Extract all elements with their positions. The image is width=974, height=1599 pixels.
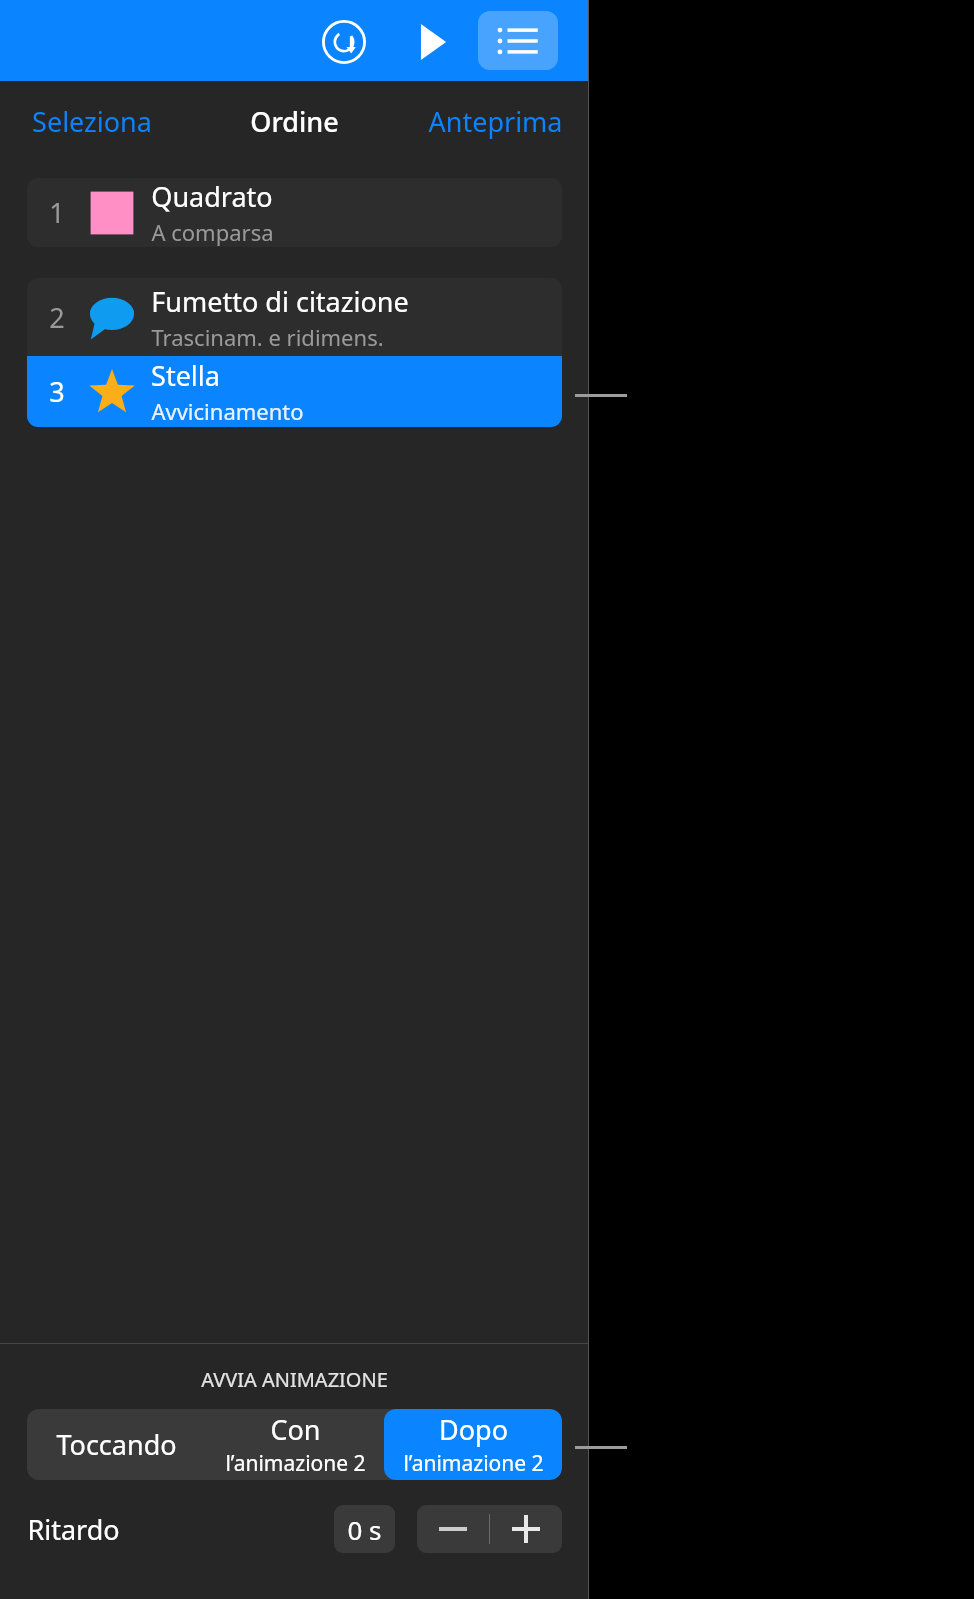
staticText: AVVIA ANIMAZIONE	[201, 1366, 388, 1393]
button[interactable]: Elenco animazioni	[478, 11, 558, 70]
staticText: Con	[270, 1411, 321, 1448]
button[interactable]: 3	[27, 356, 562, 427]
staticText: Trascinam. e ridimens.	[151, 322, 384, 352]
button[interactable]: Dopo	[384, 1409, 562, 1480]
staticText: Fumetto di citazione	[151, 283, 409, 320]
button[interactable]: Con	[206, 1409, 384, 1480]
staticText: Ordine	[250, 103, 339, 140]
button[interactable]: Riduci ritardo	[417, 1505, 489, 1553]
button[interactable]: 2	[27, 278, 562, 356]
staticText: 3	[49, 373, 65, 410]
button[interactable]: Toccando	[27, 1409, 206, 1480]
staticText: Anteprima	[428, 103, 563, 140]
staticText: A comparsa	[151, 217, 274, 247]
staticText: Ritardo	[27, 1511, 120, 1548]
staticText: Seleziona	[32, 103, 152, 140]
staticText: 1	[49, 194, 65, 231]
staticText: Avvicinamento	[151, 396, 304, 426]
button[interactable]: Riproduci	[405, 16, 457, 68]
staticText: Dopo	[439, 1411, 508, 1448]
staticText: Toccando	[56, 1426, 177, 1463]
staticText: 2	[49, 299, 65, 336]
button[interactable]: Seleziona	[8, 93, 176, 150]
button[interactable]: Anteprima	[410, 93, 581, 150]
staticText: l’animazione 2	[225, 1449, 366, 1478]
button[interactable]: Annulla	[318, 16, 370, 68]
button[interactable]: 0 s	[334, 1505, 395, 1553]
button[interactable]: Aumenta ritardo	[490, 1505, 562, 1553]
staticText: Stella	[151, 357, 220, 394]
staticText: Quadrato	[151, 178, 273, 215]
button[interactable]: 1	[27, 178, 562, 247]
staticText: l’animazione 2	[403, 1449, 544, 1478]
staticText: 0 s	[347, 1512, 382, 1547]
